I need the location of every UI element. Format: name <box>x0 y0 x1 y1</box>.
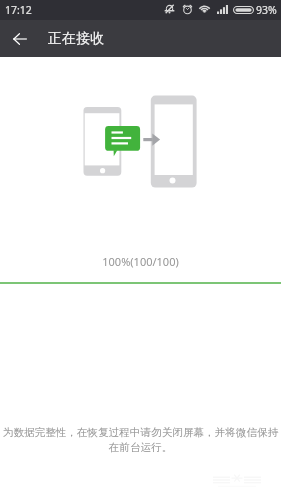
staticText: 正在接收 <box>48 30 104 48</box>
staticText: 17:12 <box>5 3 32 17</box>
staticText: 100%(100/100) <box>0 254 281 269</box>
staticText: 93% <box>256 3 277 17</box>
staticText: 为数据完整性，在恢复过程中请勿关闭屏幕，并将微信保持在前台运行。 <box>0 426 281 454</box>
button[interactable]: Back <box>3 20 36 57</box>
